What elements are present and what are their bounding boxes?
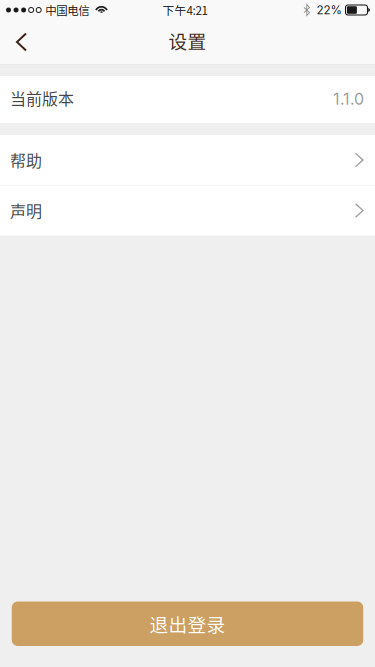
staticText: 下午4:21 <box>162 2 207 18</box>
button[interactable]: 声明 <box>0 185 375 235</box>
button[interactable]: 帮助 <box>0 135 375 185</box>
button[interactable]: 退出登录 <box>12 601 363 646</box>
staticText: 中国电信 <box>45 2 89 18</box>
staticText: 声明 <box>10 199 42 222</box>
staticText: 1.1.0 <box>333 89 364 109</box>
staticText: 设置 <box>168 27 206 54</box>
staticText: 帮助 <box>10 148 42 171</box>
staticText: 退出登录 <box>149 610 225 637</box>
staticText: 22% <box>316 3 341 17</box>
staticText: 当前版本 <box>10 86 74 110</box>
button[interactable]: Back <box>0 20 46 63</box>
